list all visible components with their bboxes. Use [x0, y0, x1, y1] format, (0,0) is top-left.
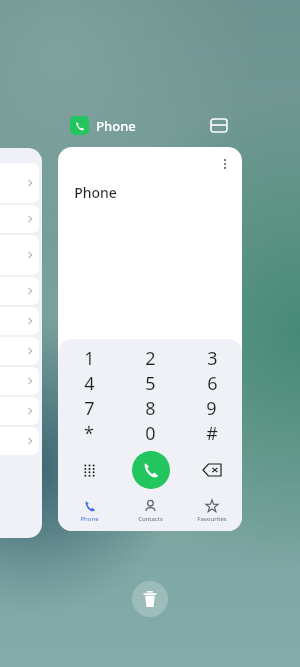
staticText: # [206, 421, 218, 446]
button[interactable]: 7 [58, 396, 120, 421]
button[interactable]: Call [132, 451, 170, 489]
staticText: Contacts [138, 515, 163, 523]
button[interactable]: Contacts [120, 494, 181, 527]
staticText: 8 [145, 396, 156, 421]
button[interactable]: Keypad [58, 446, 120, 494]
button[interactable]: 9 [181, 396, 242, 421]
button[interactable]: 6 [181, 371, 242, 396]
staticText: 0 [145, 421, 156, 446]
button[interactable]: 0 [120, 421, 181, 446]
staticText: 6 [207, 371, 218, 396]
button[interactable]: * [58, 421, 120, 446]
staticText: Phone [74, 183, 117, 202]
staticText: 1 [84, 346, 95, 371]
button[interactable]: 8 [120, 396, 181, 421]
button[interactable]: Clear all [132, 581, 168, 617]
button[interactable]: Backspace [181, 446, 242, 494]
button[interactable]: 4 [58, 371, 120, 396]
button[interactable] [0, 148, 42, 538]
staticText: 4 [84, 371, 95, 396]
staticText: 2 [145, 346, 156, 371]
button[interactable]: # [181, 421, 242, 446]
button[interactable]: Phone app icon [70, 116, 89, 135]
staticText: Favourites [197, 515, 227, 523]
button[interactable]: 5 [120, 371, 181, 396]
button[interactable]: Phone [58, 494, 120, 527]
staticText: 7 [84, 396, 95, 421]
staticText: Phone [80, 515, 99, 523]
button[interactable]: Favourites [181, 494, 242, 527]
button[interactable]: 3 [181, 346, 242, 371]
staticText: * [84, 421, 94, 446]
button[interactable]: 1 [58, 346, 120, 371]
button[interactable]: More options [218, 157, 232, 171]
staticText: 3 [207, 346, 218, 371]
staticText: 9 [206, 396, 217, 421]
button[interactable]: 2 [120, 346, 181, 371]
button[interactable]: More options [58, 147, 242, 531]
staticText: Phone [96, 117, 136, 135]
staticText: 5 [145, 371, 156, 396]
button[interactable]: Split screen [210, 117, 228, 135]
